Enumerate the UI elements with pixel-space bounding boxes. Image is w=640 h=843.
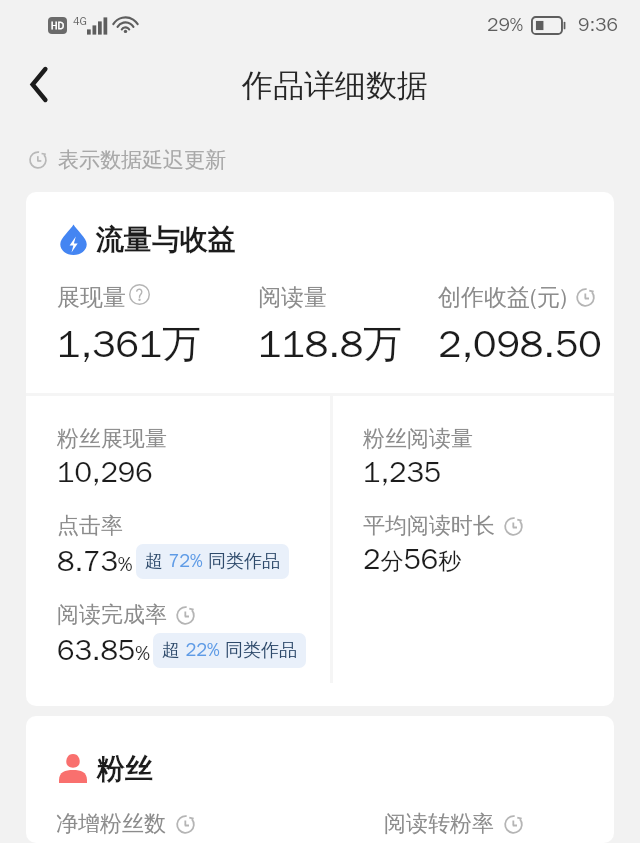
staticText: 展现量: [57, 283, 126, 312]
staticText: 粉丝: [97, 751, 153, 786]
staticText: 阅读量: [258, 283, 327, 312]
staticText: 流量与收益: [96, 222, 236, 257]
staticText: 超 72% 同类作品: [145, 550, 280, 573]
button[interactable]: Back: [12, 57, 66, 111]
staticText: 表示数据延迟更新: [58, 147, 226, 173]
staticText: 1,361万: [57, 319, 202, 368]
staticText: 2,098.50: [438, 319, 602, 368]
staticText: 点击率: [57, 512, 123, 540]
staticText: 118.8万: [258, 319, 403, 368]
staticText: 阅读完成率: [57, 601, 167, 629]
staticText: 超 22% 同类作品: [162, 639, 297, 662]
staticText: 63.85%: [57, 632, 150, 669]
staticText: 粉丝展现量: [57, 425, 167, 453]
staticText: 2分56秒: [363, 541, 462, 578]
staticText: 作品详细数据: [242, 66, 428, 105]
staticText: HD: [51, 19, 65, 32]
staticText: 净增粉丝数: [56, 810, 166, 838]
staticText: 阅读转粉率: [384, 810, 494, 838]
staticText: 1,235: [363, 454, 442, 491]
staticText: 8.73%: [57, 543, 133, 580]
staticText: 创作收益(元): [438, 283, 567, 312]
staticText: 粉丝阅读量: [363, 425, 473, 453]
staticText: 10,296: [57, 454, 153, 491]
staticText: 平均阅读时长: [363, 512, 495, 540]
staticText: 9:36: [578, 13, 618, 37]
staticText: 29%: [487, 13, 524, 37]
staticText: 4G: [73, 14, 87, 28]
